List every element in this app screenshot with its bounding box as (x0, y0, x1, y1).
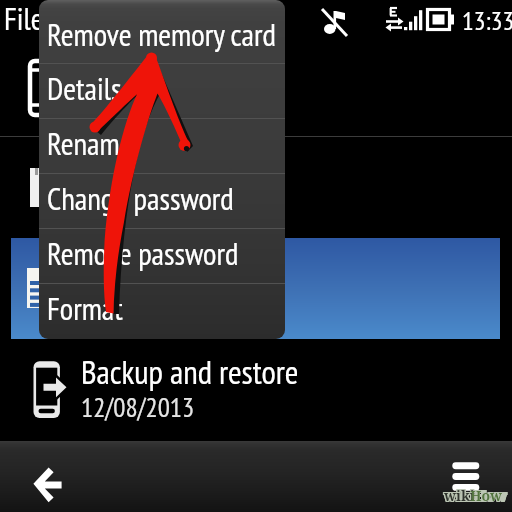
button[interactable]: Remove password (39, 228, 285, 283)
button[interactable]: Remove memory card (39, 9, 285, 64)
staticText: wikiHow (443, 486, 506, 505)
button[interactable]: Change password (39, 173, 285, 228)
staticText: wikiHow (445, 485, 508, 504)
staticText: Change password (47, 178, 234, 218)
staticText: Remove password (47, 233, 239, 273)
button[interactable] (0, 137, 512, 237)
staticText: Details (47, 68, 122, 108)
staticText: Format (47, 288, 123, 328)
button[interactable]: Options menu (444, 453, 488, 497)
staticText: Files (4, 0, 55, 38)
staticText: 13:33 (462, 4, 512, 38)
staticText: Rename (47, 123, 133, 163)
button[interactable]: Back (18, 449, 78, 505)
staticText: wikiHow (444, 485, 507, 504)
staticText: How (470, 486, 503, 505)
staticText: wiki (444, 486, 475, 505)
staticText: Backup and restore (81, 350, 299, 393)
staticText: wikiHow (444, 487, 507, 506)
staticText: Remove memory card (47, 14, 276, 54)
staticText: wikiHow (443, 487, 506, 506)
staticText: wikiHow (443, 485, 506, 504)
button[interactable]: Rename (39, 118, 285, 173)
staticText: wikiHow (444, 486, 507, 505)
staticText: wikiHow (445, 486, 508, 505)
staticText: wikiHow (445, 487, 508, 506)
button[interactable]: Format (39, 283, 285, 338)
button[interactable] (0, 45, 512, 136)
staticText: 12/08/2013 (81, 390, 195, 425)
button[interactable]: Details (39, 63, 285, 118)
button[interactable]: Backup and restore (0, 345, 512, 441)
button[interactable] (11, 238, 500, 339)
